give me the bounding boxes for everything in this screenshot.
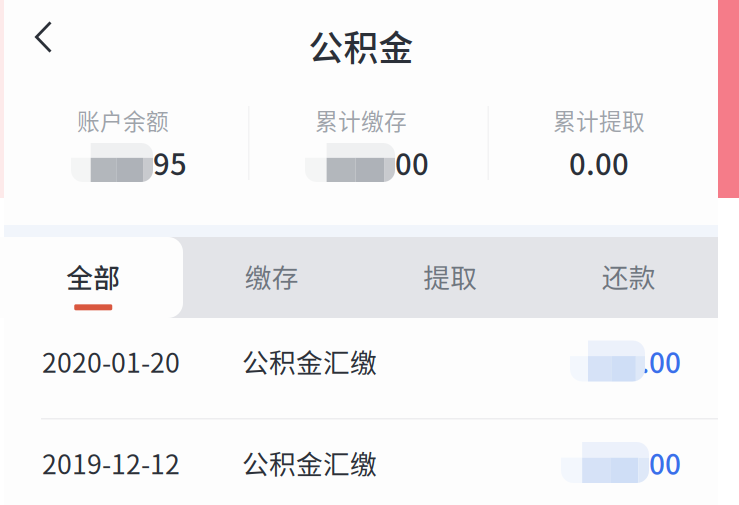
staticText: 95 — [153, 141, 187, 184]
staticText: 00 — [649, 442, 681, 483]
staticText: 0.00 — [569, 141, 629, 184]
button[interactable]: 还款 — [539, 237, 718, 318]
staticText: 全部 — [66, 257, 120, 295]
staticText: 缴存 — [245, 257, 299, 295]
button[interactable]: 2020-01-20 — [4, 318, 718, 418]
staticText: 累计缴存 — [315, 104, 407, 136]
staticText: 账户余额 — [77, 104, 169, 136]
button[interactable]: 提取 — [361, 237, 539, 318]
staticText: 2019-12-12 — [42, 443, 180, 482]
staticText: 提取 — [423, 257, 477, 295]
button[interactable]: 缴存 — [182, 237, 361, 318]
button[interactable]: 2019-12-12 — [4, 419, 718, 505]
staticText: 2020-01-20 — [42, 342, 180, 380]
staticText: .00 — [641, 341, 681, 381]
staticText: 还款 — [602, 257, 656, 295]
staticText: 公积金汇缴 — [242, 443, 377, 482]
staticText: 00 — [395, 141, 429, 184]
staticText: 累计提取 — [553, 104, 645, 136]
button[interactable]: Back — [4, 0, 80, 80]
button[interactable]: 全部 — [4, 237, 182, 318]
staticText: 公积金 — [308, 21, 413, 71]
staticText: 公积金汇缴 — [242, 342, 377, 380]
